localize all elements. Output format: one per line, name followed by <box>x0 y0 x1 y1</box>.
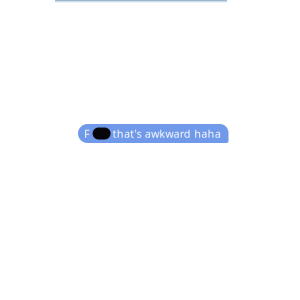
staticText: that's awkward haha <box>113 126 220 141</box>
staticText: F <box>84 126 90 141</box>
button[interactable]: F <box>78 124 228 143</box>
